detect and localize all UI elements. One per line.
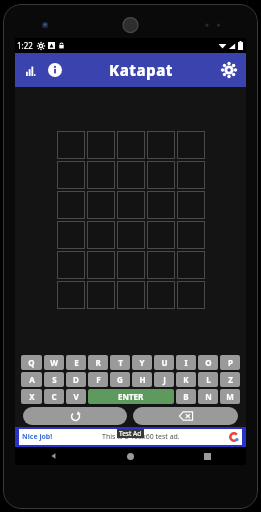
button[interactable]: Restart [23,407,127,425]
staticText: F [96,374,101,385]
button[interactable]: Q [21,355,42,370]
button[interactable]: Back [15,447,92,465]
staticText: K [183,374,189,385]
staticText: Q [28,357,35,368]
staticText: U [161,357,168,368]
button[interactable]: X [21,389,42,404]
button[interactable]: T [110,355,130,370]
staticText: Katapat [109,60,174,80]
button[interactable]: W [44,355,64,370]
button[interactable]: V [66,389,86,404]
button[interactable]: O [198,355,218,370]
staticText: E [74,357,79,368]
staticText: O [205,357,212,368]
staticText: M [226,391,234,402]
button[interactable]: Recent apps [169,447,246,465]
button[interactable]: Settings [217,58,241,82]
button[interactable]: C [44,389,64,404]
staticText: V [73,391,79,402]
staticText: T [118,357,123,368]
staticText: G [117,374,123,385]
staticText: A [29,374,35,385]
staticText: B [183,391,189,402]
staticText: H [139,374,146,385]
staticText: C [51,391,57,402]
staticText: S [52,374,57,385]
staticText: W [50,357,58,368]
button[interactable]: M [220,389,240,404]
staticText: ENTER [118,391,144,402]
staticText: Test Ad [119,429,142,438]
button[interactable]: U [154,355,174,370]
button[interactable]: Nice job! [19,429,242,445]
button[interactable]: K [176,372,196,387]
staticText: 1:22 [17,40,33,51]
staticText: R [95,357,101,368]
staticText: P [228,357,233,368]
button[interactable]: E [66,355,86,370]
button[interactable]: ENTER [88,389,174,404]
staticText: Z [228,374,233,385]
staticText: I [184,357,188,368]
staticText: D [73,374,79,385]
staticText: Nice job! [22,432,53,442]
button[interactable]: A [21,372,42,387]
button[interactable]: L [198,372,218,387]
button[interactable]: Backspace [133,407,238,425]
button[interactable]: J [154,372,174,387]
button[interactable]: P [220,355,240,370]
staticText: This is a 468x60 test ad. [102,432,180,442]
button[interactable]: D [66,372,86,387]
button[interactable]: H [132,372,152,387]
button[interactable]: G [110,372,130,387]
button[interactable]: I [176,355,196,370]
button[interactable]: Statistics [20,59,42,81]
button[interactable]: Z [220,372,240,387]
button[interactable]: S [44,372,64,387]
button[interactable]: R [88,355,108,370]
staticText: L [206,374,211,385]
button[interactable]: B [176,389,196,404]
button[interactable]: N [198,389,218,404]
staticText: N [205,391,212,402]
staticText: Y [139,357,145,368]
button[interactable]: Home [92,447,169,465]
button[interactable]: F [88,372,108,387]
button[interactable]: Y [132,355,152,370]
button[interactable]: Info [44,59,66,81]
staticText: J [163,374,166,385]
staticText: X [29,391,35,402]
